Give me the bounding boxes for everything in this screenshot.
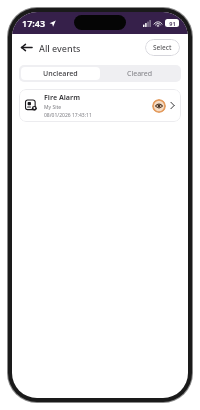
button[interactable]: Uncleared xyxy=(21,67,100,80)
button[interactable]: Cleared xyxy=(100,67,179,80)
staticText: 08/01/2026 17:43:11 xyxy=(44,112,92,119)
staticText: My Site xyxy=(44,104,62,111)
staticText: Uncleared xyxy=(43,69,78,79)
button[interactable]: Select xyxy=(145,39,180,56)
staticText: All events xyxy=(39,42,81,54)
staticText: Cleared xyxy=(127,69,153,79)
other: Acknowledge event xyxy=(152,99,166,113)
button[interactable]: Fire Alarm xyxy=(19,89,181,122)
staticText: 17:43 xyxy=(22,17,46,29)
staticText: Select xyxy=(153,43,172,52)
staticText: 91 xyxy=(169,20,176,27)
button[interactable]: Back xyxy=(17,38,84,57)
staticText: Fire Alarm xyxy=(44,93,81,103)
